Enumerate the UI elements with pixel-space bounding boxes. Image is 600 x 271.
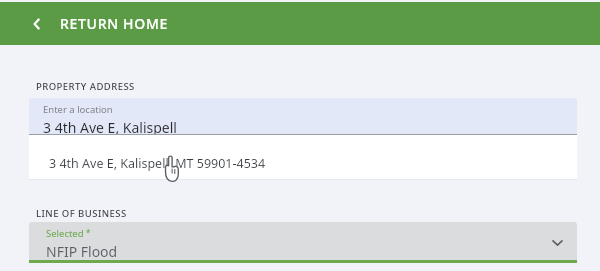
staticText: 3 4th Ave E, Kalispell, MT 59901-4534: [49, 155, 266, 172]
staticText: Selected: [46, 227, 84, 240]
button[interactable]: Selected: [29, 222, 577, 263]
button[interactable]: Enter a location: [29, 98, 577, 135]
staticText: Enter a location: [43, 103, 113, 116]
button[interactable]: Open dropdown: [547, 233, 567, 253]
staticText: *: [84, 227, 91, 238]
staticText: 3 4th Ave E, Kalispell: [43, 118, 177, 135]
staticText: LINE OF BUSINESS: [36, 207, 127, 220]
button[interactable]: Back: [26, 13, 48, 35]
staticText: PROPERTY ADDRESS: [36, 80, 135, 93]
staticText: NFIP Flood: [46, 242, 118, 261]
staticText: RETURN HOME: [60, 14, 168, 33]
button[interactable]: 3 4th Ave E, Kalispell, MT 59901-4534: [29, 135, 577, 180]
